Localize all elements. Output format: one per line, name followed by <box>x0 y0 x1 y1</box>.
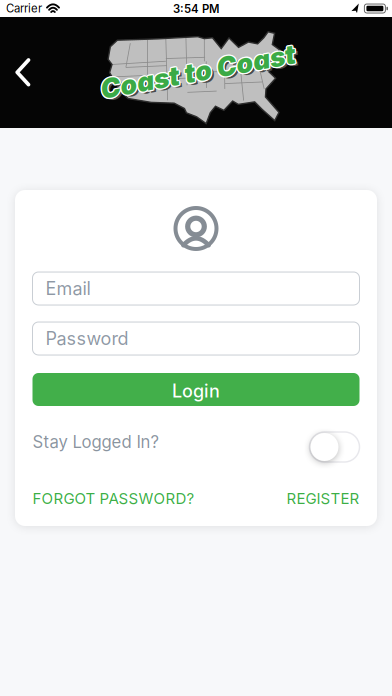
staticText: Email <box>45 278 90 299</box>
staticText: Coast to Coast <box>100 55 298 88</box>
staticText: Coast to Coast <box>99 57 297 89</box>
button[interactable]: FORGOT PASSWORD? <box>32 489 194 508</box>
staticText: Coast to Coast <box>101 58 299 90</box>
staticText: Coast to Coast <box>98 54 296 87</box>
staticText: Coast to Coast <box>99 55 297 88</box>
staticText: Stay Logged In? <box>32 432 159 452</box>
staticText: Coast to Coast <box>98 55 296 88</box>
staticText: REGISTER <box>286 489 359 508</box>
button[interactable]: REGISTER <box>286 489 359 508</box>
staticText: Coast to Coast <box>98 56 296 89</box>
button[interactable]: Login <box>32 373 359 406</box>
staticText: Login <box>172 380 220 402</box>
staticText: Coast to Coast <box>100 56 298 89</box>
staticText: Coast to Coast <box>99 54 297 86</box>
button[interactable]: Stay Logged In <box>309 432 359 462</box>
staticText: Password <box>45 328 128 349</box>
staticText: Coast to Coast <box>100 54 298 87</box>
button[interactable]: Email <box>32 272 359 305</box>
staticText: FORGOT PASSWORD? <box>32 489 194 508</box>
staticText: Carrier <box>6 2 42 15</box>
staticText: 3:54 PM <box>173 2 219 16</box>
button[interactable]: Password <box>32 322 359 355</box>
button[interactable]: Back <box>0 48 44 97</box>
